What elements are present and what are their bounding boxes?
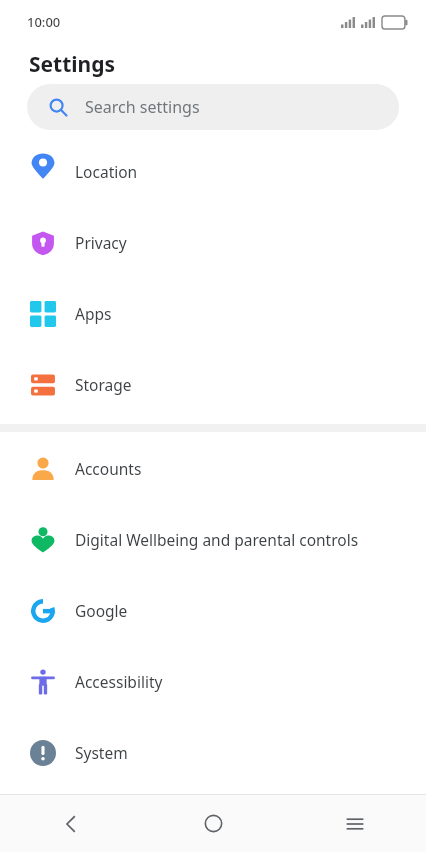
staticText: Settings [29,50,116,79]
button[interactable]: Back [0,795,142,852]
staticText: Digital Wellbeing and parental controls [75,529,359,550]
staticText: Accounts [75,458,142,479]
staticText: 10:00 [27,13,61,31]
staticText: Search settings [85,96,200,118]
button[interactable]: Accessibility [0,646,426,717]
button[interactable]: System [0,717,426,788]
button[interactable]: Accounts [0,433,426,504]
staticText: Accessibility [75,671,163,692]
button[interactable]: Home [142,795,284,852]
button[interactable]: Storage [0,349,426,420]
button[interactable]: Location [0,136,426,207]
button[interactable]: Privacy [0,207,426,278]
staticText: Google [75,600,128,621]
button[interactable]: Search settings [27,84,399,130]
staticText: Apps [75,303,112,324]
staticText: Storage [75,374,132,395]
staticText: Privacy [75,232,127,253]
button[interactable]: Recent apps [284,795,426,852]
button[interactable]: Apps [0,278,426,349]
staticText: System [75,742,128,763]
staticText: Location [75,161,138,182]
button[interactable]: Google [0,575,426,646]
button[interactable]: Digital Wellbeing and parental controls [0,504,426,575]
